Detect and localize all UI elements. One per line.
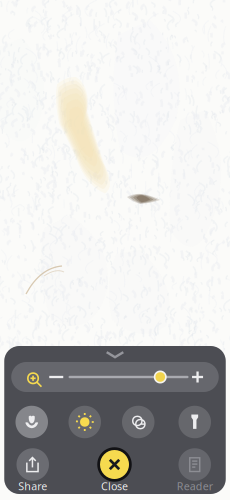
staticText: Reader: [177, 479, 213, 493]
staticText: Close: [101, 479, 128, 493]
button[interactable]: Share: [6, 447, 60, 494]
button[interactable]: Zoom out: [46, 366, 66, 388]
staticText: Share: [18, 479, 47, 493]
button[interactable]: Flashlight: [178, 406, 211, 438]
button[interactable]: Filters: [122, 406, 154, 438]
button[interactable]: Reader: [168, 447, 222, 494]
button[interactable]: Zoom: [22, 367, 46, 391]
button[interactable]: Point and Speak: [15, 406, 48, 438]
button[interactable]: Close: [87, 447, 141, 494]
button[interactable]: Zoom in: [189, 366, 207, 388]
button[interactable]: Brightness: [68, 406, 101, 438]
